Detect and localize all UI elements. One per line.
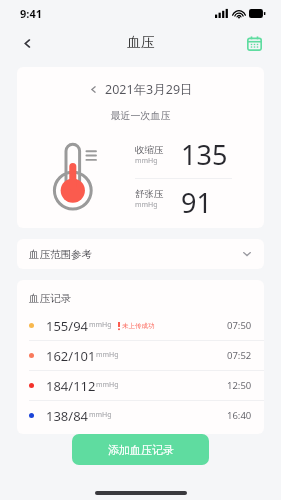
staticText: 184/112: [46, 377, 96, 395]
staticText: mmHg: [96, 350, 119, 360]
staticText: 收缩压: [135, 144, 164, 156]
staticText: mmHg: [135, 156, 158, 166]
button[interactable]: 162/101: [17, 341, 264, 370]
button[interactable]: 2021年3月29日: [17, 81, 264, 98]
staticText: 07:50: [227, 319, 252, 332]
staticText: 添加血压记录: [108, 443, 174, 457]
staticText: 135: [181, 136, 228, 173]
staticText: 9:41: [20, 6, 42, 21]
button[interactable]: Back: [10, 26, 44, 60]
button[interactable]: 添加血压记录: [72, 434, 209, 465]
staticText: mmHg: [89, 410, 112, 420]
staticText: 血压记录: [29, 292, 71, 305]
staticText: 未上传成功: [122, 322, 155, 330]
staticText: mmHg: [135, 200, 158, 210]
button[interactable]: 138/84: [17, 401, 264, 430]
button[interactable]: 184/112: [17, 371, 264, 400]
staticText: mmHg: [96, 380, 119, 390]
staticText: mmHg: [89, 320, 112, 330]
staticText: 138/84: [46, 407, 89, 425]
staticText: 162/101: [46, 347, 96, 365]
staticText: 血压: [127, 34, 155, 52]
staticText: 16:40: [227, 409, 252, 422]
button[interactable]: 血压范围参考: [17, 239, 264, 269]
staticText: 07:52: [227, 349, 252, 362]
staticText: 155/94: [46, 317, 89, 335]
staticText: 2021年3月29日: [105, 81, 193, 98]
staticText: 12:50: [227, 379, 252, 392]
staticText: 血压范围参考: [29, 248, 92, 261]
button[interactable]: Calendar: [237, 26, 271, 60]
button[interactable]: 155/94: [17, 311, 264, 340]
staticText: 最近一次血压: [17, 109, 264, 122]
staticText: 91: [181, 184, 212, 214]
staticText: 舒张压: [135, 188, 164, 200]
